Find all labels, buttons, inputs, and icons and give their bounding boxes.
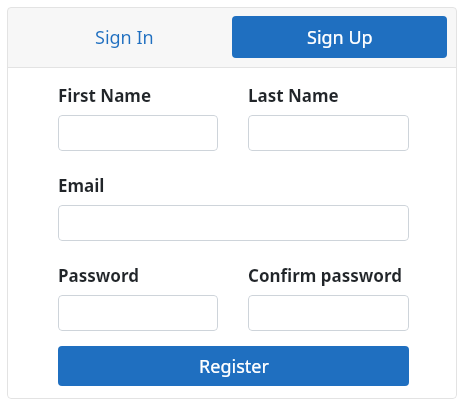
staticText: Email xyxy=(58,174,105,197)
button[interactable]: Register xyxy=(58,346,409,386)
button[interactable] xyxy=(58,115,218,151)
button[interactable] xyxy=(248,115,409,151)
staticText: Register xyxy=(199,354,269,379)
staticText: Confirm password xyxy=(248,264,403,287)
staticText: Sign In xyxy=(95,25,154,50)
staticText: Sign Up xyxy=(307,25,373,50)
staticText: Last Name xyxy=(248,84,339,107)
button[interactable] xyxy=(58,295,218,331)
button[interactable]: Sign In xyxy=(17,7,232,67)
staticText: First Name xyxy=(58,84,152,107)
button[interactable]: Sign Up xyxy=(232,16,447,58)
button[interactable] xyxy=(58,205,409,241)
button[interactable] xyxy=(248,295,409,331)
staticText: Password xyxy=(58,264,139,287)
